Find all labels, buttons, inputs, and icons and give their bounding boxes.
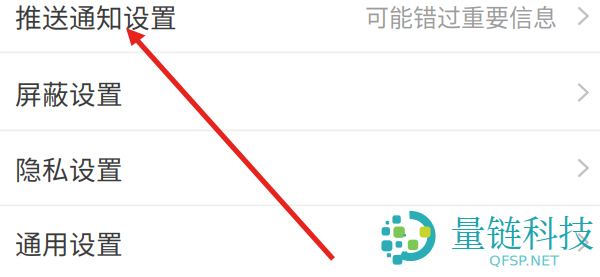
staticText: 推送通知设置 <box>15 0 177 35</box>
staticText: 可能错过重要信息 <box>365 0 557 33</box>
button[interactable]: 隐私设置 <box>0 131 600 204</box>
button[interactable]: 通用设置 <box>0 206 600 277</box>
staticText: QFSP.NET <box>489 252 559 269</box>
staticText: 屏蔽设置 <box>15 73 123 112</box>
staticText: 隐私设置 <box>15 149 123 187</box>
staticText: 量链科技 <box>450 206 594 257</box>
button[interactable]: 屏蔽设置 <box>0 53 600 129</box>
staticText: 通用设置 <box>15 223 123 262</box>
button[interactable]: 推送通知设置 <box>0 0 600 51</box>
